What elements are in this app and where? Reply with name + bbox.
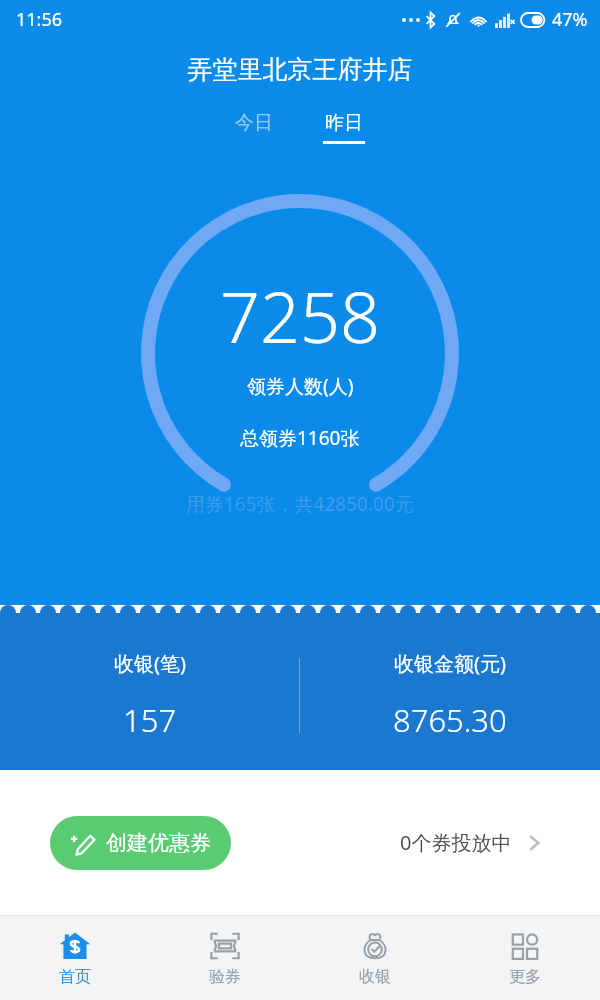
staticText: 昨日 <box>325 111 363 135</box>
button[interactable]: 更多 <box>450 915 600 1000</box>
staticText: 创建优惠券 <box>106 830 211 856</box>
button[interactable]: 昨日 <box>309 107 379 148</box>
staticText: 11:56 <box>16 7 63 32</box>
button[interactable]: 验券 <box>150 915 300 1000</box>
staticText: 8765.30 <box>393 699 507 741</box>
staticText: 领券人数(人) <box>247 373 354 399</box>
button[interactable]: 收银(笔) <box>0 635 299 756</box>
staticText: 157 <box>123 699 177 741</box>
staticText: 7258 <box>220 268 380 363</box>
staticText: 今日 <box>235 111 273 135</box>
button[interactable]: 收银 <box>300 915 450 1000</box>
staticText: 首页 <box>59 967 91 987</box>
button[interactable]: 今日 <box>221 107 287 139</box>
staticText: 收银金额(元) <box>394 650 506 677</box>
staticText: 0个券投放中 <box>400 829 512 856</box>
button[interactable]: 收银金额(元) <box>300 635 600 756</box>
button[interactable]: 创建优惠券 <box>50 816 231 870</box>
button[interactable]: 首页 <box>0 915 150 1000</box>
button[interactable]: 0个券投放中 <box>394 823 550 862</box>
staticText: 弄堂里北京王府井店 <box>0 54 600 85</box>
staticText: 用券165张，共42850.00元 <box>186 491 414 517</box>
staticText: 验券 <box>209 967 241 987</box>
staticText: 收银 <box>359 967 391 987</box>
staticText: 收银(笔) <box>114 650 186 677</box>
staticText: 更多 <box>509 967 541 987</box>
staticText: 47% <box>552 7 588 32</box>
staticText: 总领券1160张 <box>240 425 360 451</box>
